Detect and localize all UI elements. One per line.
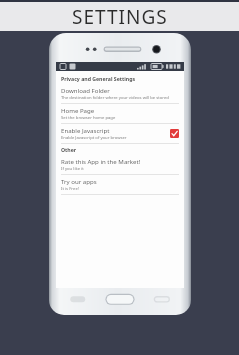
staticText: Set the browser home page <box>61 115 116 121</box>
button[interactable]: Enable Javascript <box>61 124 179 143</box>
staticText: Rate this App in the Market! <box>61 157 141 165</box>
staticText: Privacy and General Settings <box>61 75 136 82</box>
staticText: Other <box>61 146 77 153</box>
button[interactable]: Enable Javascript checkbox <box>170 129 179 138</box>
staticText: It is Free! <box>61 186 79 192</box>
staticText: SETTINGS <box>72 4 168 30</box>
button[interactable]: Download Folder <box>61 84 179 103</box>
staticText: Enable Javascript of your browser <box>61 135 127 141</box>
staticText: Enable Javascript <box>61 126 110 134</box>
staticText: Home Page <box>61 106 95 114</box>
button[interactable]: Rate this App in the Market! <box>61 155 179 174</box>
staticText: If you like it <box>61 166 84 172</box>
button[interactable]: Home Page <box>61 104 179 123</box>
staticText: Download Folder <box>61 86 110 94</box>
button[interactable]: Try our apps <box>61 175 179 194</box>
staticText: The destination folder where your videos… <box>61 95 169 101</box>
staticText: Try our apps <box>61 177 97 185</box>
